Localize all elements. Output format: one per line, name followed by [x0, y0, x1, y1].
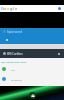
button[interactable]: Sponsored [0, 28, 64, 44]
staticText: Get Started with Setup [1, 60, 27, 63]
button[interactable]: Google [1, 6, 18, 11]
staticText: Wifi [11, 68, 16, 71]
staticText: o [4, 6, 7, 11]
button[interactable]: Bluetooth [0, 77, 64, 81]
staticText: Wifi Cardbox [7, 52, 23, 56]
button[interactable]: Shop [29, 92, 36, 99]
staticText: o [7, 6, 10, 11]
staticText: g [10, 6, 13, 11]
staticText: l [13, 6, 15, 11]
staticText: Bluetooth [11, 78, 23, 81]
staticText: Sponsored [7, 30, 23, 34]
button[interactable]: Account [58, 7, 61, 10]
button[interactable]: Wifi Cardbox [0, 49, 64, 58]
staticText: G [1, 6, 4, 11]
button[interactable]: Wifi [0, 67, 64, 71]
staticText: e [15, 6, 18, 11]
